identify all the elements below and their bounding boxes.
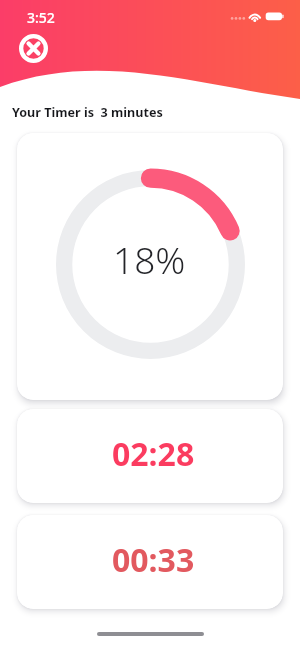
button[interactable]: Close — [19, 34, 48, 63]
button[interactable]: 02:28 — [17, 409, 283, 503]
staticText: 02:28 — [112, 432, 195, 476]
button[interactable]: 00:33 — [17, 515, 283, 609]
staticText: 18% — [113, 234, 186, 284]
staticText: Your Timer is 3 minutes — [12, 104, 163, 121]
staticText: 3:52 — [27, 8, 55, 27]
button[interactable]: 18% — [17, 133, 283, 400]
staticText: 00:33 — [112, 538, 195, 582]
